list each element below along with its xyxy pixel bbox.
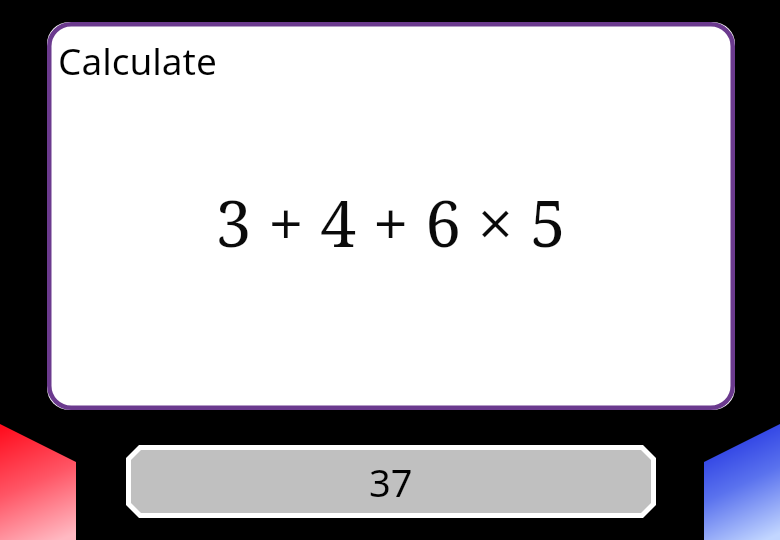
button[interactable] bbox=[0, 0, 780, 540]
button[interactable] bbox=[0, 0, 780, 540]
button[interactable]: Previous bbox=[0, 0, 780, 540]
